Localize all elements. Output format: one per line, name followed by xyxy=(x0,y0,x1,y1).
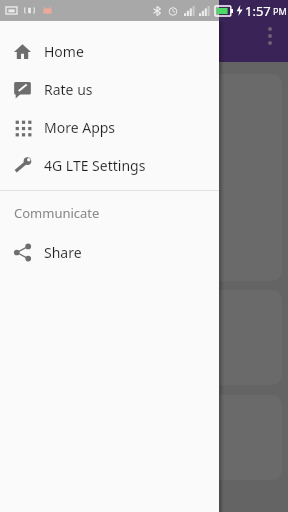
staticText: Communicate xyxy=(14,204,100,222)
button[interactable]: Home xyxy=(0,32,219,70)
staticText: More Apps xyxy=(44,118,116,137)
button[interactable]: Share xyxy=(0,233,219,271)
button[interactable]: More Apps xyxy=(0,108,219,146)
button[interactable]: 4G LTE Settings xyxy=(0,146,219,184)
staticText: Rate us xyxy=(44,80,93,99)
button[interactable] xyxy=(14,290,282,385)
staticText: 1:57 xyxy=(245,2,271,20)
staticText: PM xyxy=(273,5,287,17)
staticText: 4G LTE Settings xyxy=(44,156,146,175)
button[interactable]: Rate us xyxy=(0,70,219,108)
button[interactable]: Hidden xyxy=(14,74,282,281)
staticText: Home xyxy=(44,42,84,61)
staticText: Code xyxy=(30,217,81,246)
button[interactable] xyxy=(14,395,282,480)
button[interactable]: More options xyxy=(256,20,284,52)
staticText: Share xyxy=(44,243,82,262)
staticText: Hidden xyxy=(30,184,102,213)
